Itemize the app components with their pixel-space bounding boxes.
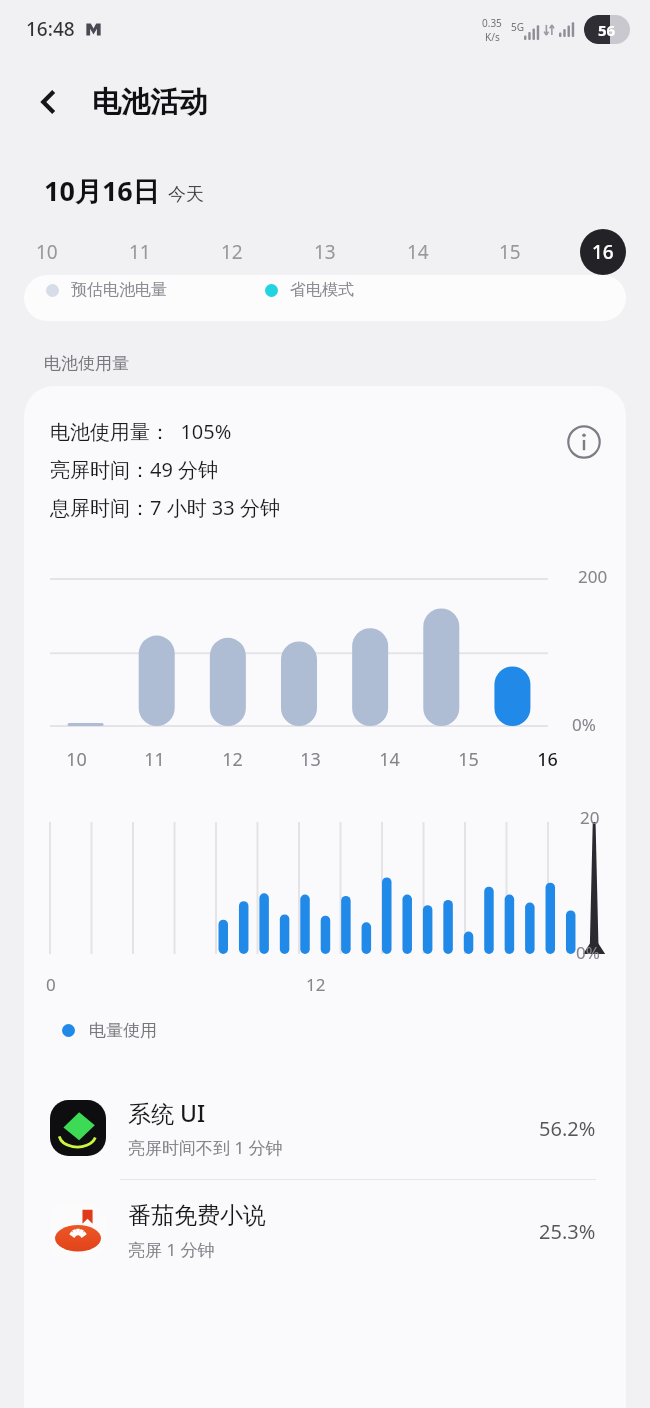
button[interactable]: 14 bbox=[395, 229, 441, 275]
staticText: 10 bbox=[66, 747, 87, 772]
staticText: 电池使用量 bbox=[44, 353, 129, 374]
button[interactable]: 预估电池电量 bbox=[24, 275, 626, 321]
staticText: 16:48 bbox=[26, 16, 75, 42]
staticText: 11 bbox=[144, 747, 165, 772]
staticText: 12 bbox=[306, 973, 326, 996]
staticText: 亮屏时间不到 1 分钟 bbox=[128, 1136, 283, 1159]
button[interactable]: 13 bbox=[302, 229, 348, 275]
staticText: 13 bbox=[300, 747, 321, 772]
staticText: 10月16日 bbox=[44, 172, 160, 209]
staticText: 省电模式 bbox=[290, 280, 354, 300]
staticText: 番茄免费小说 bbox=[128, 1201, 266, 1230]
staticText: 5G bbox=[511, 20, 524, 34]
staticText: 12 bbox=[222, 747, 243, 772]
staticText: 亮屏时间：49 分钟 bbox=[50, 456, 219, 483]
staticText: 12 bbox=[221, 239, 243, 265]
button[interactable]: 12 bbox=[209, 229, 255, 275]
staticText: 14 bbox=[379, 747, 400, 772]
button[interactable]: 16 bbox=[580, 229, 626, 275]
staticText: 15 bbox=[458, 747, 479, 772]
button[interactable]: Back bbox=[22, 75, 76, 129]
staticText: 16 bbox=[592, 239, 614, 265]
staticText: 10 bbox=[36, 239, 58, 265]
staticText: 亮屏 1 分钟 bbox=[128, 1238, 215, 1261]
staticText: 预估电池电量 bbox=[71, 280, 167, 300]
button[interactable]: 10 bbox=[24, 229, 70, 275]
staticText: K/s bbox=[485, 30, 500, 44]
button[interactable]: 11 bbox=[117, 229, 163, 275]
staticText: 0 bbox=[46, 973, 56, 996]
staticText: 25.3% bbox=[539, 1218, 596, 1245]
staticText: 0.35 bbox=[482, 16, 502, 30]
staticText: 0% bbox=[576, 941, 600, 964]
staticText: 16 bbox=[537, 747, 558, 772]
staticText: 系统 UI bbox=[128, 1097, 206, 1128]
button[interactable]: 番茄免费小说 bbox=[24, 1180, 626, 1282]
staticText: 14 bbox=[407, 239, 429, 265]
staticText: 11 bbox=[129, 239, 151, 265]
staticText: 56.2% bbox=[539, 1115, 596, 1142]
staticText: 13 bbox=[314, 239, 336, 265]
staticText: 电量使用 bbox=[89, 1020, 157, 1041]
staticText: 今天 bbox=[168, 183, 204, 206]
staticText: 0% bbox=[572, 713, 596, 736]
staticText: 56 bbox=[598, 20, 616, 40]
staticText: 息屏时间：7 小时 33 分钟 bbox=[50, 494, 280, 521]
staticText: 200 bbox=[578, 565, 608, 588]
staticText: 电池活动 bbox=[92, 84, 208, 121]
staticText: 20 bbox=[580, 806, 600, 829]
button[interactable]: 系统 UI bbox=[24, 1077, 626, 1179]
staticText: 15 bbox=[499, 239, 521, 265]
staticText: 电池使用量： 105% bbox=[50, 418, 232, 445]
button[interactable]: Info bbox=[560, 418, 608, 466]
button[interactable]: 15 bbox=[487, 229, 533, 275]
